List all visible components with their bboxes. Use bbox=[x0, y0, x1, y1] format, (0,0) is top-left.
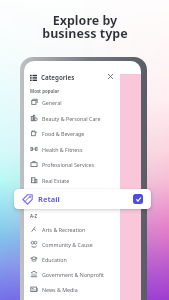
button[interactable]: Retail bbox=[14, 189, 151, 209]
staticText: Categories bbox=[41, 73, 75, 81]
button[interactable]: Health & Fitness bbox=[30, 141, 141, 157]
staticText: Retail bbox=[38, 194, 60, 204]
button[interactable]: Beauty & Personal Care bbox=[30, 110, 141, 126]
staticText: Health & Fitness bbox=[42, 146, 83, 153]
staticText: Arts & Recreation bbox=[42, 226, 86, 233]
staticText: Explore by business type bbox=[42, 12, 128, 42]
staticText: Most popular bbox=[30, 88, 60, 94]
button[interactable]: News & Media bbox=[30, 281, 141, 297]
button[interactable]: Close bbox=[105, 71, 116, 82]
staticText: News & Media bbox=[42, 286, 78, 293]
button[interactable]: Food & Beverage bbox=[30, 125, 141, 141]
button[interactable]: Government & Nonprofit bbox=[30, 266, 141, 282]
button[interactable]: Community & Cause bbox=[30, 236, 141, 252]
staticText: Beauty & Personal Care bbox=[42, 115, 101, 122]
button[interactable]: Professional Services bbox=[30, 156, 141, 172]
staticText: A-Z bbox=[30, 213, 37, 219]
staticText: Food & Beverage bbox=[42, 130, 85, 137]
button[interactable]: Education bbox=[30, 251, 141, 267]
staticText: Real Estate bbox=[42, 177, 70, 184]
button[interactable]: Arts & Recreation bbox=[30, 221, 141, 237]
button[interactable]: Categories bbox=[24, 71, 141, 83]
button[interactable]: Real Estate bbox=[30, 172, 141, 188]
staticText: Community & Cause bbox=[42, 241, 93, 248]
staticText: Professional Services bbox=[42, 161, 95, 168]
button[interactable]: General bbox=[30, 94, 141, 110]
staticText: General bbox=[42, 99, 62, 106]
staticText: Education bbox=[42, 256, 67, 263]
staticText: Government & Nonprofit bbox=[42, 271, 105, 278]
